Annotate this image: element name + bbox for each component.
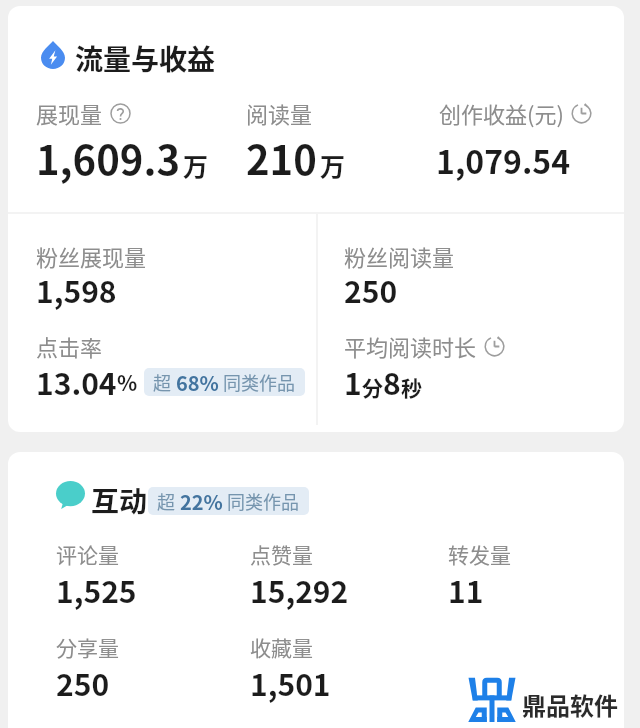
button[interactable]: 流量与收益: [8, 6, 624, 432]
staticText: 创作收益(元): [439, 97, 564, 129]
staticText: 评论量: [56, 539, 119, 569]
staticText: 1,609.3: [36, 129, 180, 187]
staticText: 210: [246, 129, 317, 187]
staticText: 粉丝阅读量: [344, 240, 455, 272]
staticText: 万: [320, 147, 346, 183]
staticText: 粉丝展现量: [36, 240, 147, 272]
staticText: 250: [56, 661, 110, 704]
staticText: 展现量: [36, 97, 103, 129]
staticText: 同类作品: [219, 369, 296, 395]
staticText: 超: [153, 369, 176, 395]
staticText: 11: [448, 568, 484, 611]
staticText: 阅读量: [246, 97, 313, 129]
staticText: 万: [183, 147, 209, 183]
staticText: 1,525: [56, 568, 137, 611]
button[interactable]: 数据更新时间: [571, 103, 592, 124]
staticText: 转发量: [448, 539, 511, 569]
staticText: 分: [362, 372, 383, 402]
staticText: 秒: [401, 372, 422, 402]
button[interactable]: 超: [148, 487, 309, 515]
staticText: 流量与收益: [75, 38, 216, 79]
staticText: 点击率: [36, 330, 103, 362]
staticText: 250: [344, 268, 398, 311]
staticText: 分享量: [56, 632, 119, 662]
staticText: 22%: [180, 487, 223, 515]
button[interactable]: 互动: [8, 452, 624, 728]
staticText: 1,598: [36, 268, 117, 311]
staticText: 点赞量: [250, 539, 313, 569]
button[interactable]: 数据更新时间: [484, 336, 505, 357]
staticText: 13.04: [36, 360, 117, 403]
staticText: 鼎品软件: [522, 687, 618, 722]
staticText: 15,292: [250, 568, 349, 611]
staticText: 同类作品: [223, 488, 300, 514]
staticText: %: [117, 367, 138, 397]
button[interactable]: 超: [144, 368, 305, 396]
staticText: 超: [157, 488, 180, 514]
staticText: 平均阅读时长: [344, 330, 477, 362]
staticText: 互动: [91, 480, 148, 521]
staticText: 1,079.54: [436, 137, 571, 183]
button[interactable]: 展现量说明: [110, 103, 131, 124]
staticText: 8: [383, 360, 401, 403]
staticText: 1: [344, 360, 362, 403]
staticText: 68%: [176, 368, 219, 396]
staticText: 收藏量: [250, 632, 313, 662]
staticText: 1,501: [250, 661, 331, 704]
